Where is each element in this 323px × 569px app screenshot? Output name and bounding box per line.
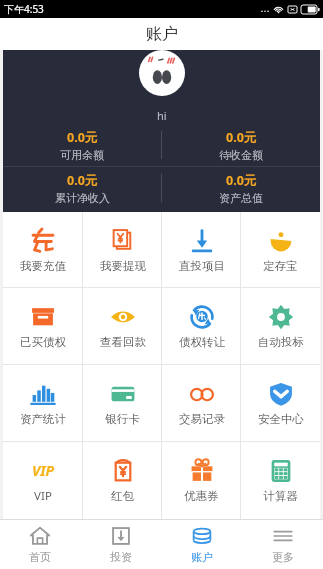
staticText: 可用余额	[60, 148, 104, 162]
button[interactable]: VIP	[3, 442, 83, 519]
button[interactable]: 计算器	[241, 442, 320, 519]
staticText: 我要提现	[100, 259, 146, 273]
staticText: VIP	[32, 461, 55, 480]
button[interactable]: 已买债权	[3, 288, 83, 365]
button[interactable]: 查看回款	[83, 288, 162, 365]
staticText: 安全中心	[258, 412, 304, 426]
button[interactable]: 优惠券	[162, 442, 241, 519]
staticText: 0.0元	[226, 172, 257, 189]
button[interactable]: 0.0元	[3, 124, 161, 166]
button[interactable]: 首页	[0, 519, 80, 569]
staticText: 待收金额	[219, 148, 263, 162]
staticText: 账户	[191, 550, 213, 564]
button[interactable]: 资产统计	[3, 365, 83, 442]
staticText: 0.0元	[226, 129, 257, 146]
staticText: 直投项目	[179, 259, 225, 273]
staticText: 资产统计	[20, 412, 66, 426]
button[interactable]: 定存宝	[241, 212, 320, 288]
button[interactable]: 债权转让	[162, 288, 241, 365]
staticText: 交易记录	[179, 412, 225, 426]
staticText: 红包	[111, 489, 134, 503]
staticText: 0.0元	[67, 129, 98, 146]
staticText: 定存宝	[263, 259, 298, 273]
button[interactable]: 直投项目	[162, 212, 241, 288]
staticText: 0.0元	[67, 172, 98, 189]
button[interactable]: 我要提现	[83, 212, 162, 288]
button[interactable]: 0.0元	[3, 167, 161, 209]
staticText: 首页	[29, 550, 51, 564]
staticText: 我要充值	[20, 259, 66, 273]
staticText: 债权转让	[179, 335, 225, 349]
staticText: 自动投标	[258, 335, 304, 349]
staticText: 已买债权	[20, 335, 66, 349]
staticText: 更多	[272, 550, 294, 564]
staticText: 账户	[146, 24, 178, 44]
button[interactable]: 0.0元	[162, 167, 320, 209]
button[interactable]: 账户	[161, 519, 242, 569]
staticText: 查看回款	[100, 335, 146, 349]
button[interactable]: 银行卡	[83, 365, 162, 442]
staticText: VIP	[34, 488, 52, 504]
staticText: 资产总值	[219, 191, 263, 205]
button[interactable]: 安全中心	[241, 365, 320, 442]
staticText: 优惠券	[184, 489, 219, 503]
button[interactable]: 0.0元	[162, 124, 320, 166]
button[interactable]: 红包	[83, 442, 162, 519]
button[interactable]: 我要充值	[3, 212, 83, 288]
staticText: 计算器	[263, 489, 298, 503]
button[interactable]: 更多	[242, 519, 323, 569]
staticText: 银行卡	[105, 412, 140, 426]
button[interactable]: 交易记录	[162, 365, 241, 442]
staticText: 下午4:53	[4, 2, 44, 16]
staticText: 累计净收入	[55, 191, 110, 205]
button[interactable]: Avatar	[139, 50, 185, 96]
button[interactable]: 投资	[80, 519, 161, 569]
staticText: hi	[157, 108, 167, 122]
button[interactable]: 自动投标	[241, 288, 320, 365]
staticText: 投资	[110, 550, 132, 564]
